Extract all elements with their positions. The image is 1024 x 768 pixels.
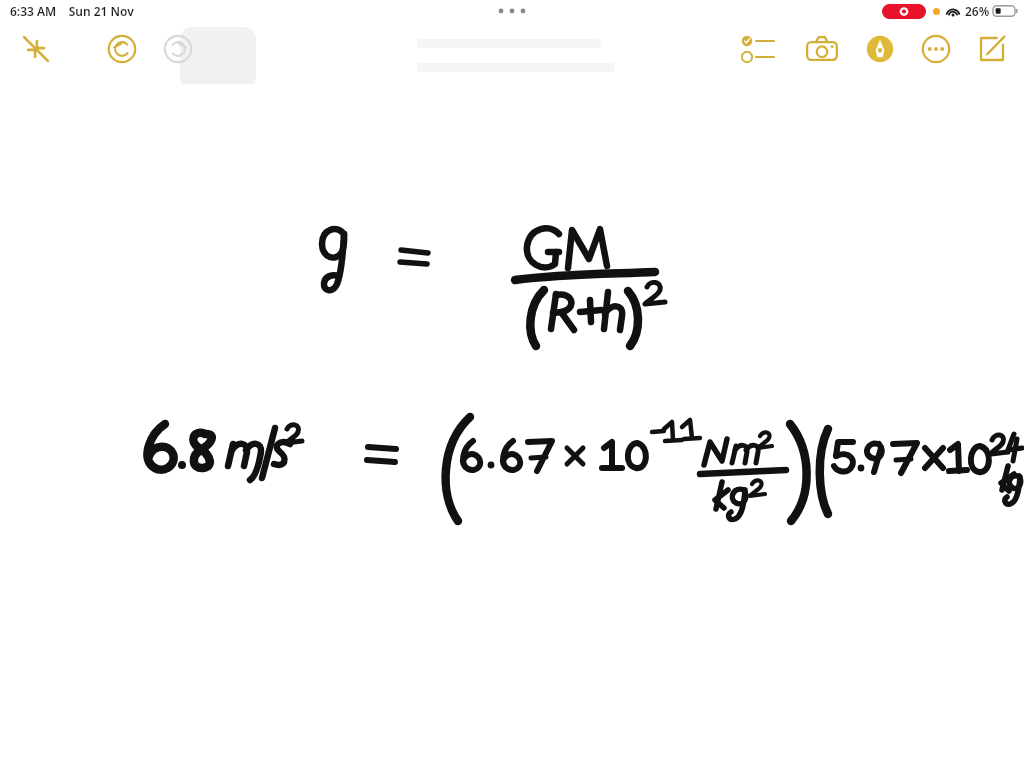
button[interactable]: Collapse xyxy=(14,27,58,71)
button[interactable]: More options xyxy=(914,27,958,71)
button[interactable]: Camera xyxy=(798,27,846,71)
staticText: 6:33 AM Sun 21 Nov xyxy=(10,3,134,19)
button[interactable]: Edit xyxy=(970,27,1014,71)
button[interactable]: Select list xyxy=(738,27,782,71)
button[interactable]: Pen tool xyxy=(858,27,902,71)
button[interactable]: Undo xyxy=(100,27,144,71)
staticText: 26% xyxy=(965,3,990,19)
button[interactable]: Redo xyxy=(156,27,200,71)
button[interactable]: Page thumbnail xyxy=(180,27,256,89)
